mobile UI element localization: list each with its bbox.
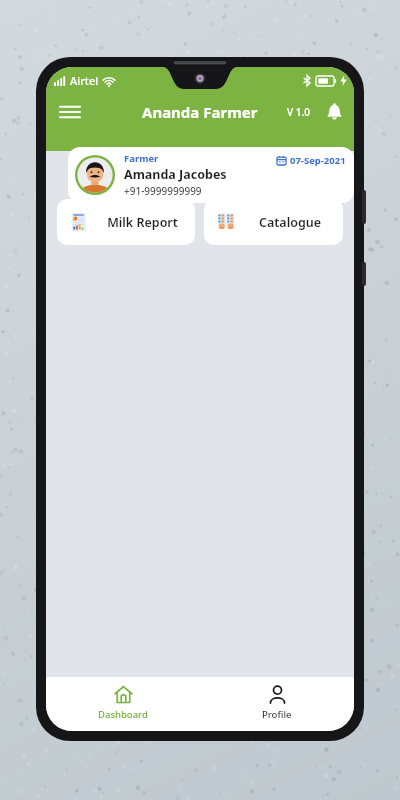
button[interactable]: Notifications — [320, 98, 348, 126]
staticText: Catalogue — [245, 214, 335, 231]
staticText: V 1.0 — [287, 105, 310, 119]
staticText: Farmer — [124, 152, 159, 165]
staticText: Profile — [262, 708, 292, 721]
staticText: 07-Sep-2021 — [290, 154, 346, 167]
button[interactable]: Milk Report — [57, 199, 195, 245]
staticText: +91-9999999999 — [124, 184, 202, 198]
staticText: Airtel — [70, 73, 99, 88]
staticText: Dashboard — [98, 708, 148, 721]
staticText: Amanda Jacobes — [124, 166, 227, 183]
staticText: Milk Report — [98, 214, 187, 231]
button[interactable]: Profile — [200, 677, 354, 731]
button[interactable]: Catalogue — [204, 199, 343, 245]
button[interactable]: Dashboard — [46, 677, 200, 731]
staticText: Ananda Farmer — [142, 102, 258, 122]
button[interactable]: Open menu — [54, 96, 86, 128]
button[interactable]: Farmer — [68, 147, 354, 203]
